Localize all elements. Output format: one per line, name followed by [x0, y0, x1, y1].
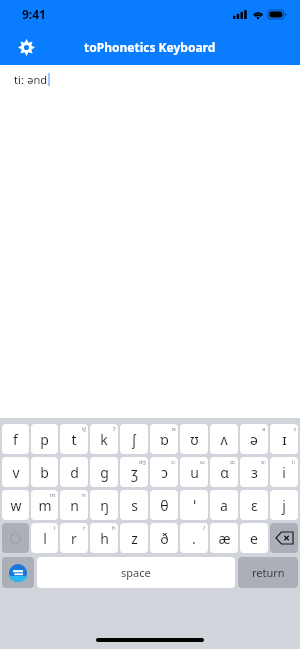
staticText: a	[220, 496, 228, 515]
staticText: l	[54, 524, 56, 532]
staticText: ʒ	[131, 463, 138, 482]
button[interactable]: ɛ	[240, 490, 268, 520]
staticText: ˈ	[193, 496, 196, 515]
staticText: ŋ	[100, 496, 109, 515]
button[interactable]: æ	[210, 523, 238, 553]
button[interactable]: n	[60, 490, 88, 520]
button[interactable]: m	[31, 490, 58, 520]
staticText: .	[192, 529, 196, 548]
button[interactable]: Shift	[2, 523, 29, 553]
staticText: m	[38, 496, 52, 515]
button[interactable]: ˈ	[180, 490, 208, 520]
staticText: n	[82, 491, 86, 499]
staticText: ʔ	[113, 425, 116, 433]
button[interactable]: return	[238, 557, 298, 588]
staticText: s	[131, 496, 138, 515]
staticText: l	[43, 529, 47, 548]
button[interactable]: r	[60, 523, 88, 553]
staticText: 9:41	[22, 6, 46, 22]
staticText: j	[282, 496, 286, 515]
button[interactable]: ɪ	[270, 424, 298, 454]
staticText: ʊ	[190, 430, 199, 449]
staticText: h	[112, 524, 116, 532]
staticText: p	[40, 430, 49, 449]
staticText: θ	[160, 496, 169, 515]
button[interactable]: h	[90, 523, 118, 553]
button[interactable]: Backspace	[270, 523, 298, 553]
staticText: ɑː	[230, 458, 236, 466]
button[interactable]: u	[180, 457, 208, 487]
staticText: iː	[292, 458, 296, 466]
staticText: n	[70, 496, 79, 515]
button[interactable]: v	[2, 457, 29, 487]
button[interactable]: w	[2, 490, 29, 520]
staticText: ɜː	[261, 458, 266, 466]
staticText: r	[83, 524, 86, 532]
staticText: k	[100, 430, 108, 449]
staticText: ʃ	[132, 430, 136, 449]
button[interactable]: a	[210, 490, 238, 520]
button[interactable]: b	[31, 457, 58, 487]
staticText: tʃ	[82, 425, 86, 433]
button[interactable]: θ	[150, 490, 178, 520]
button[interactable]: ʊ	[180, 424, 208, 454]
staticText: ɒ	[160, 430, 169, 449]
button[interactable]: ɔ	[150, 457, 178, 487]
staticText: ɒ	[172, 425, 176, 433]
staticText: ɔː	[171, 458, 176, 466]
button[interactable]: ð	[150, 523, 178, 553]
staticText: ð	[160, 529, 169, 548]
button[interactable]: l	[31, 523, 58, 553]
button[interactable]: Settings	[10, 31, 42, 63]
staticText: /	[203, 524, 206, 532]
staticText: ɑ	[220, 463, 229, 482]
staticText: z	[131, 529, 138, 548]
button[interactable]: e	[240, 523, 268, 553]
staticText: t	[71, 430, 77, 449]
button[interactable]: space	[37, 557, 235, 588]
button[interactable]: ŋ	[90, 490, 118, 520]
button[interactable]: t	[60, 424, 88, 454]
staticText: w	[10, 496, 22, 515]
button[interactable]: s	[120, 490, 148, 520]
staticText: ɪ	[294, 425, 296, 433]
button[interactable]: ɑ	[210, 457, 238, 487]
button[interactable]: d	[60, 457, 88, 487]
button[interactable]: Switch keyboard	[2, 557, 34, 588]
button[interactable]: ʌ	[210, 424, 238, 454]
staticText: u	[190, 463, 199, 482]
button[interactable]: j	[270, 490, 298, 520]
button[interactable]: z	[120, 523, 148, 553]
staticText: ɔ	[161, 463, 168, 482]
button[interactable]: ʒ	[120, 457, 148, 487]
staticText: ɪ	[282, 430, 287, 449]
button[interactable]: g	[90, 457, 118, 487]
staticText: h	[100, 529, 109, 548]
button[interactable]: ɜ	[240, 457, 268, 487]
staticText: space	[121, 565, 151, 580]
staticText: m	[50, 491, 56, 499]
staticText: uː	[200, 458, 206, 466]
staticText: e	[250, 529, 258, 548]
staticText: ʌ	[220, 430, 228, 449]
staticText: ɛ	[251, 496, 258, 515]
button[interactable]: i	[270, 457, 298, 487]
button[interactable]: ʃ	[120, 424, 148, 454]
staticText: ɜ	[251, 463, 258, 482]
staticText: ə	[250, 430, 258, 449]
button[interactable]: .	[180, 523, 208, 553]
button[interactable]: k	[90, 424, 118, 454]
staticText: d	[70, 463, 79, 482]
button[interactable]: p	[31, 424, 58, 454]
button[interactable]: ɒ	[150, 424, 178, 454]
staticText: g	[100, 463, 109, 482]
staticText: ə	[262, 425, 266, 433]
staticText: b	[40, 463, 49, 482]
staticText: f	[13, 430, 18, 449]
staticText: v	[12, 463, 20, 482]
staticText: dʒ	[139, 458, 146, 466]
button[interactable]: f	[2, 424, 29, 454]
staticText: æ	[218, 529, 231, 548]
staticText: toPhonetics Keyboard	[84, 39, 216, 55]
button[interactable]: ə	[240, 424, 268, 454]
